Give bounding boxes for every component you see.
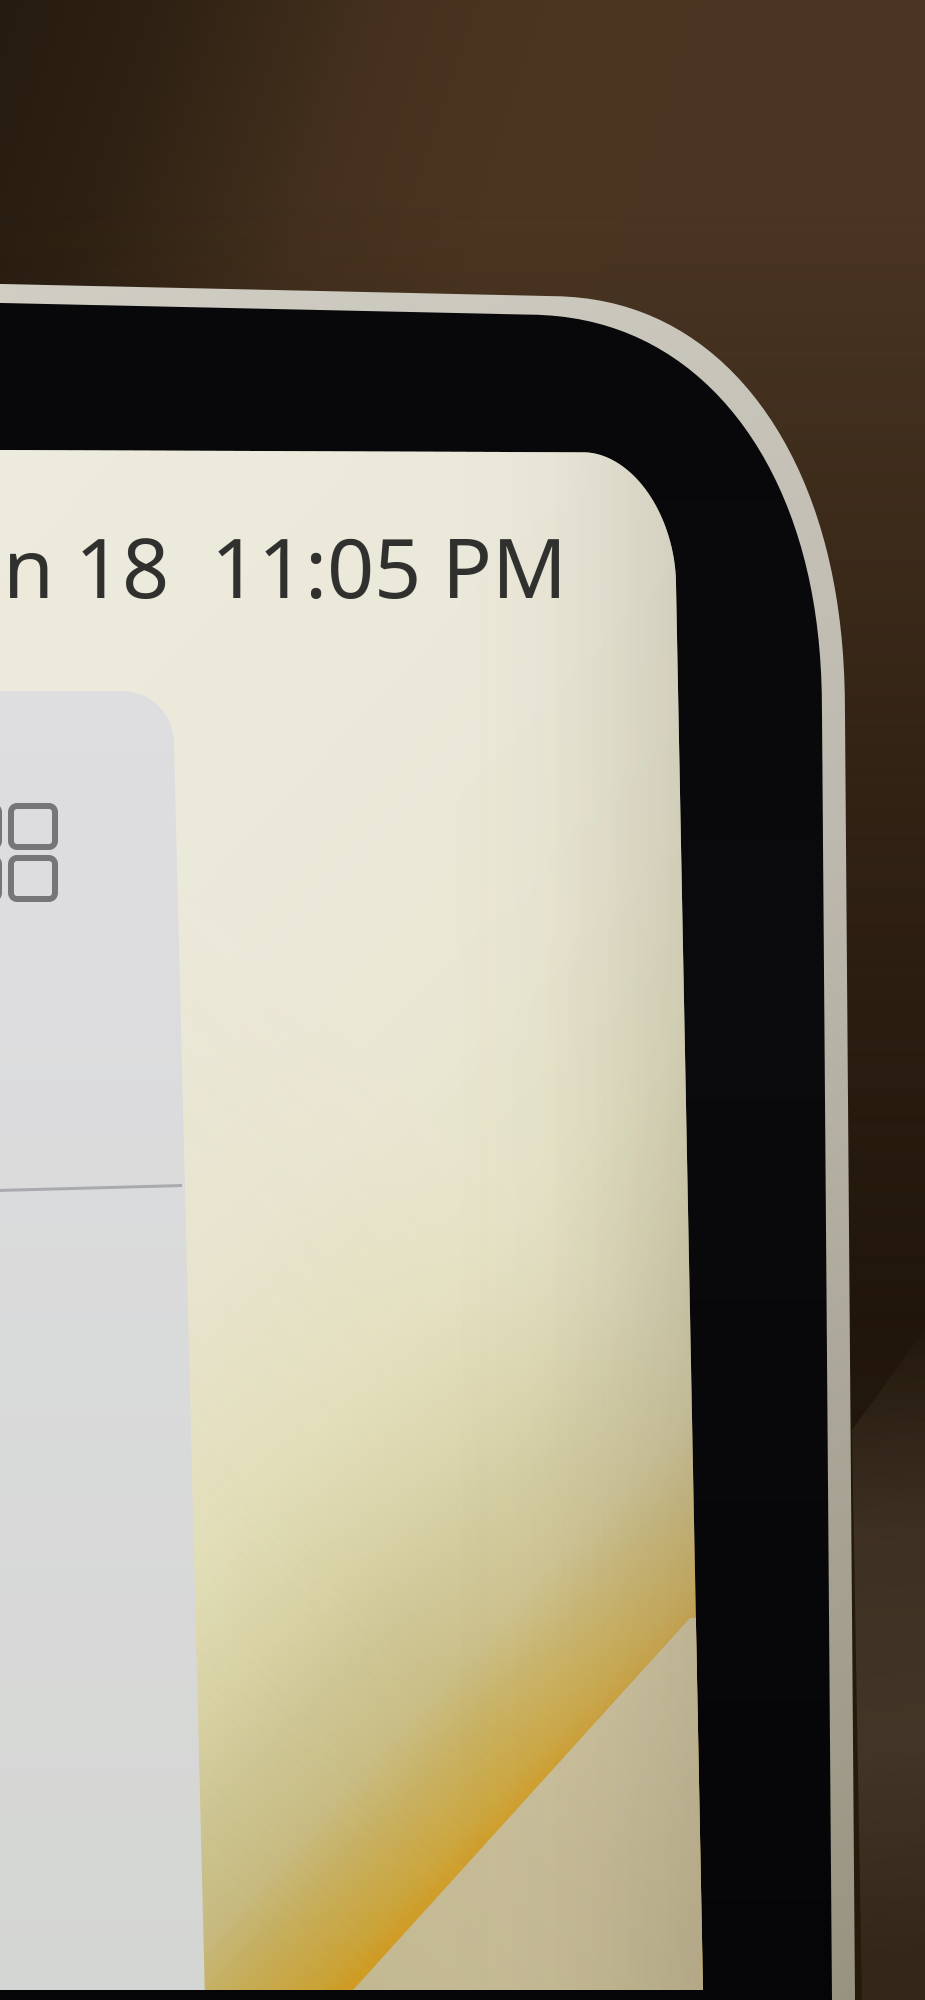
staticText: n 18 11:05 PM: [3, 511, 567, 621]
